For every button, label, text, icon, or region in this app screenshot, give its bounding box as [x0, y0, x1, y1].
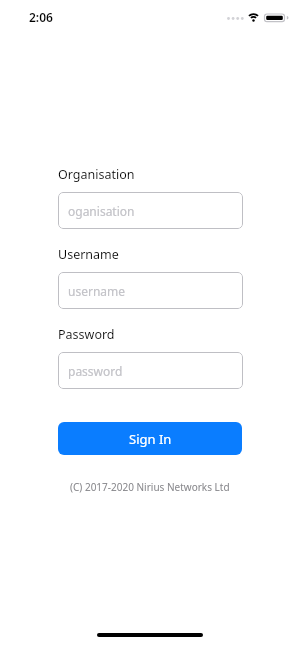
staticText: password [68, 363, 123, 379]
staticText: oganisation [68, 203, 135, 219]
staticText: (C) 2017-2020 Nirius Networks Ltd [70, 480, 230, 494]
staticText: Sign In [129, 430, 172, 448]
button[interactable]: Sign In [58, 422, 242, 455]
staticText: Organisation [58, 166, 135, 183]
button[interactable]: password [58, 352, 243, 389]
staticText: 2:06 [29, 9, 53, 25]
staticText: Password [58, 326, 115, 343]
staticText: Username [58, 246, 119, 263]
button[interactable]: username [58, 272, 243, 309]
staticText: username [68, 283, 126, 299]
button[interactable]: oganisation [58, 192, 243, 229]
